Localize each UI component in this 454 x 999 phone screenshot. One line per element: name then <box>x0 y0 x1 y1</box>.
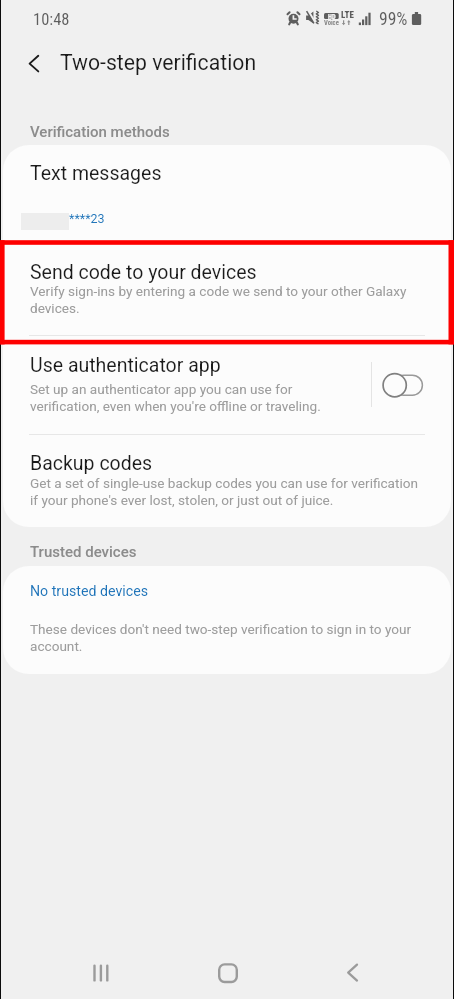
button[interactable]: Use authenticator app switch <box>374 356 430 402</box>
staticText: Send code to your devices <box>30 261 257 284</box>
staticText: Two-step verification <box>60 50 257 75</box>
staticText: ****23 <box>69 211 105 226</box>
staticText: These devices don't need two-step verifi… <box>30 621 425 655</box>
button[interactable]: Back <box>327 946 379 998</box>
button[interactable]: No trusted devices <box>3 566 451 606</box>
staticText: Voice <box>324 19 339 27</box>
staticText: Text messages <box>30 162 162 185</box>
staticText: Verification methods <box>30 123 170 141</box>
button[interactable]: Backup codes <box>3 435 451 527</box>
staticText: Backup codes <box>30 452 153 475</box>
staticText: 10:48 <box>33 10 70 29</box>
staticText: Verify sign-ins by entering a code we se… <box>30 283 425 317</box>
button[interactable]: Home <box>201 946 253 998</box>
staticText: Set up an authenticator app you can use … <box>30 381 340 415</box>
button[interactable]: Recent apps <box>75 946 127 998</box>
staticText: No trusted devices <box>30 583 149 600</box>
button[interactable]: Send code to your devices <box>3 240 451 335</box>
button[interactable]: Use authenticator app <box>3 336 451 434</box>
staticText: Trusted devices <box>30 543 137 561</box>
staticText: LTE <box>341 10 354 21</box>
staticText: 99% <box>379 9 408 30</box>
button[interactable]: Text messages <box>3 145 451 240</box>
staticText: Use authenticator app <box>30 354 221 377</box>
staticText: Get a set of single-use backup codes you… <box>30 475 425 509</box>
button[interactable]: Navigate up <box>14 46 54 82</box>
staticText: HD <box>328 13 336 19</box>
